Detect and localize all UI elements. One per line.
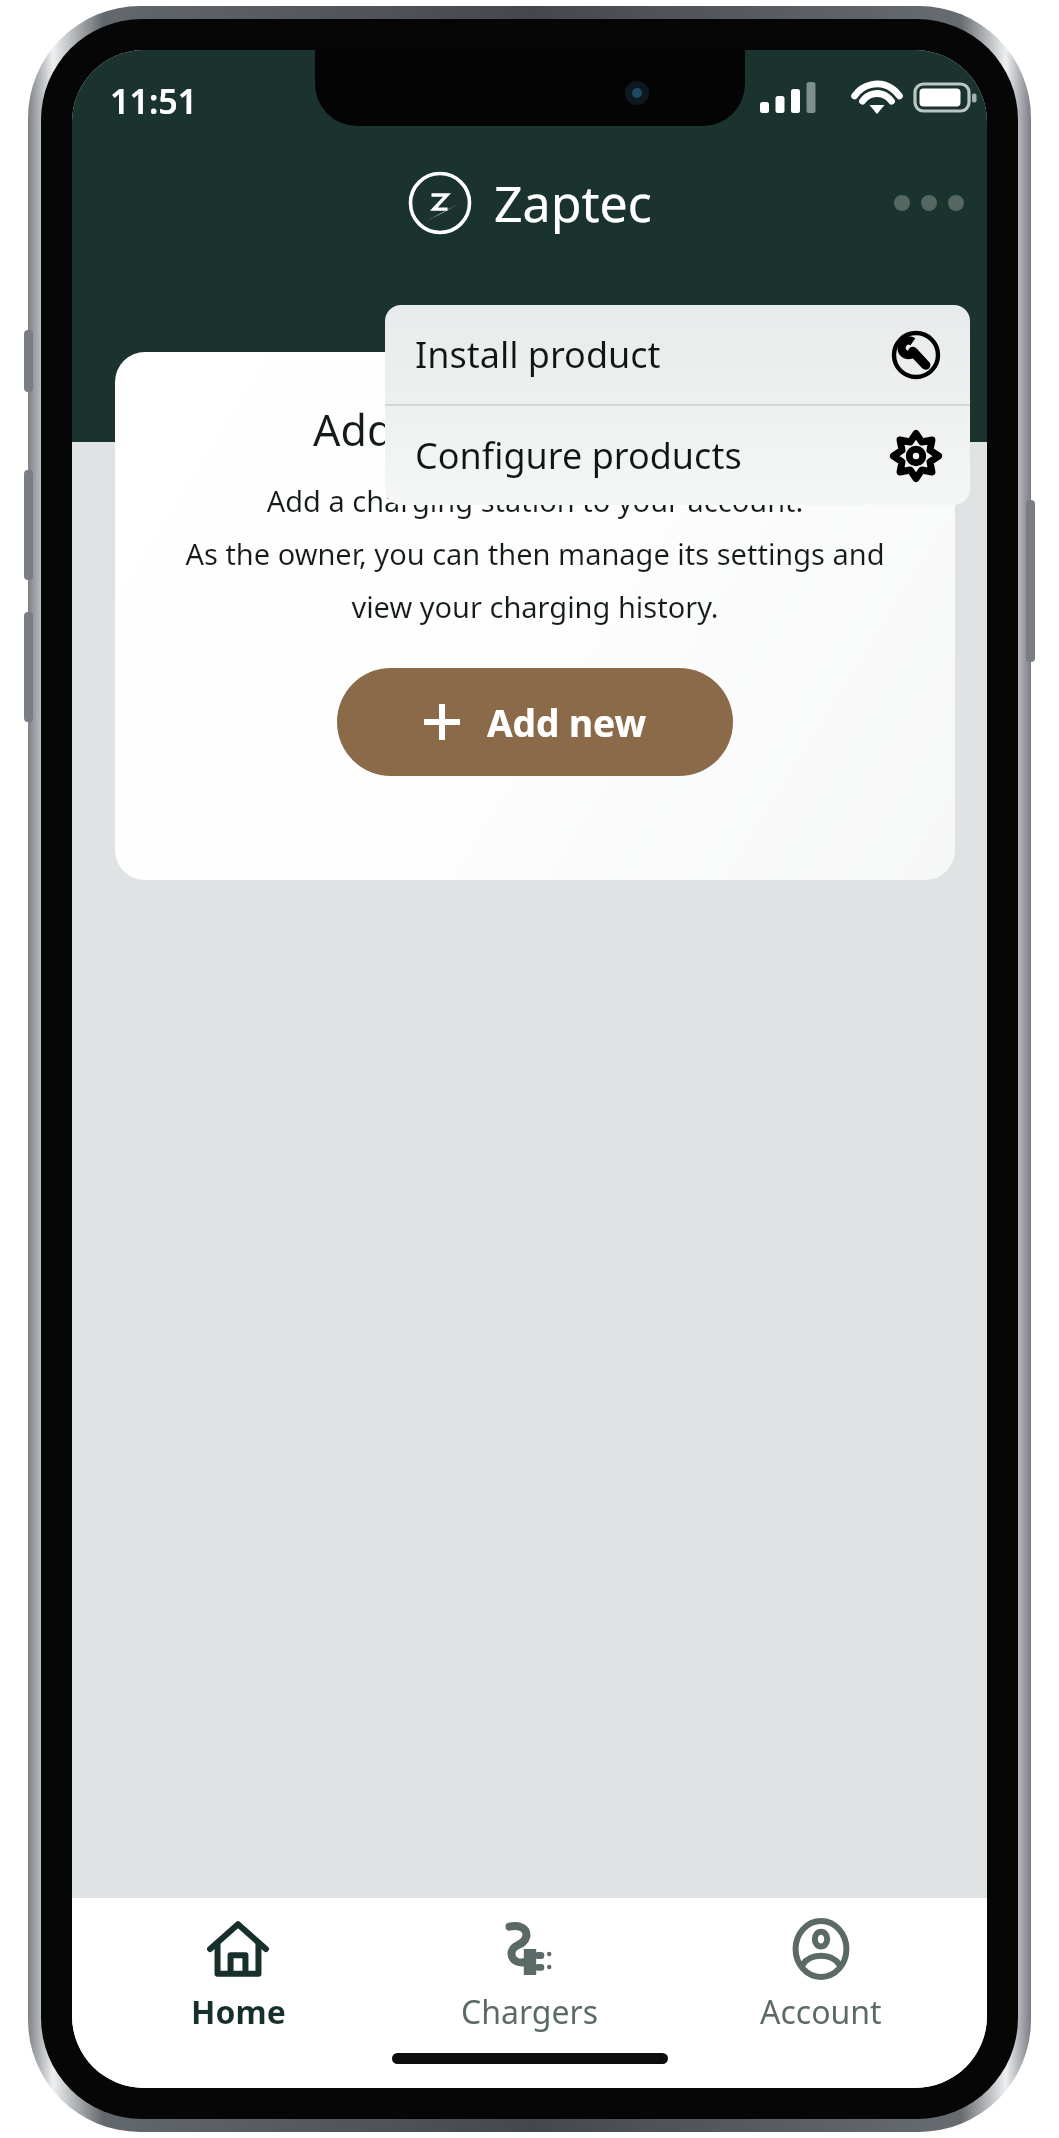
button[interactable]: More options <box>879 153 979 253</box>
button[interactable]: Chargers <box>405 1912 655 2040</box>
staticText: Add your first product <box>313 400 758 459</box>
staticText: Chargers <box>461 1990 599 2034</box>
button[interactable]: Install product <box>385 305 970 404</box>
button[interactable]: Account <box>696 1912 946 2040</box>
staticText: Account <box>760 1990 882 2034</box>
staticText: Home <box>191 1990 286 2034</box>
staticText: Configure products <box>415 431 742 480</box>
staticText: Install product <box>415 330 661 379</box>
staticText: Add new <box>487 697 647 747</box>
button[interactable]: Add new <box>337 668 733 776</box>
button[interactable]: Home <box>113 1912 363 2040</box>
staticText: Zaptec <box>494 169 652 237</box>
button[interactable]: Configure products <box>385 406 970 505</box>
staticText: Add a charging station to your account. … <box>185 481 885 626</box>
staticText: 11:51 <box>110 78 198 124</box>
button[interactable]: Zaptec <box>408 169 652 237</box>
